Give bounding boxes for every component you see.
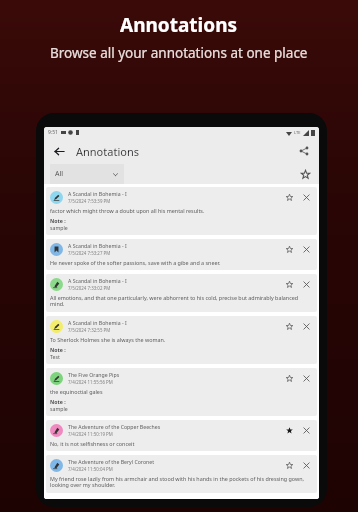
staticText: sample: [50, 224, 68, 231]
button[interactable]: Delete: [300, 459, 313, 472]
button[interactable]: Share: [295, 142, 313, 160]
staticText: All emotions, and that one particularly,…: [50, 294, 313, 308]
staticText: The Adventure of the Copper Beeches: [68, 423, 161, 430]
staticText: the equinoctial gales: [50, 388, 103, 395]
button[interactable]: Back: [50, 142, 68, 160]
staticText: The Five Orange Pips: [68, 371, 120, 378]
staticText: 7/5/2024 7:32:55 PM: [68, 327, 111, 333]
staticText: Test: [50, 353, 60, 360]
button[interactable]: A Scandal in Bohemia - I: [46, 239, 317, 270]
staticText: A Scandal in Bohemia - I: [68, 190, 127, 197]
button[interactable]: Favorite: [283, 459, 296, 472]
staticText: 7/4/2024 11:50:04 PM: [68, 466, 113, 472]
staticText: LTE: [294, 130, 301, 135]
button[interactable]: Favorite: [283, 278, 296, 291]
staticText: He never spoke of the softer passions, s…: [50, 259, 221, 266]
staticText: Note :: [50, 217, 66, 224]
staticText: Annotations: [76, 144, 139, 159]
button[interactable]: Favorite: [283, 243, 296, 256]
button[interactable]: A Scandal in Bohemia - I: [46, 316, 317, 364]
staticText: Browse all your annotations at one place: [50, 44, 308, 62]
button[interactable]: Favorites filter: [297, 166, 313, 182]
staticText: 7/4/2024 11:55:56 PM: [68, 379, 113, 385]
button[interactable]: The Five Orange Pips: [46, 368, 317, 416]
staticText: sample: [50, 405, 68, 412]
staticText: Annotations: [120, 12, 238, 38]
button[interactable]: A Scandal in Bohemia - I: [46, 274, 317, 312]
button[interactable]: Delete: [300, 424, 313, 437]
staticText: To Sherlock Holmes she is always the wom…: [50, 336, 166, 343]
button[interactable]: Delete: [300, 243, 313, 256]
button[interactable]: Delete: [300, 372, 313, 385]
button[interactable]: A Scandal in Bohemia - I: [46, 187, 317, 235]
button[interactable]: The Adventure of the Beryl Coronet: [46, 455, 317, 493]
staticText: No, it is not selfishness or conceit: [50, 440, 135, 447]
staticText: 7/4/2024 11:50:19 PM: [68, 431, 113, 437]
staticText: A Scandal in Bohemia - I: [68, 277, 127, 284]
staticText: A Scandal in Bohemia - I: [68, 242, 127, 249]
staticText: 7/5/2024 7:33:02 PM: [68, 285, 111, 291]
button[interactable]: All: [50, 164, 124, 184]
staticText: 9:51: [48, 129, 58, 136]
button[interactable]: Favorite: [283, 191, 296, 204]
button[interactable]: Favorite: [283, 424, 296, 437]
button[interactable]: Favorite: [283, 320, 296, 333]
button[interactable]: Favorite: [283, 372, 296, 385]
button[interactable]: The Adventure of the Copper Beeches: [46, 420, 317, 451]
staticText: Note :: [50, 398, 66, 405]
staticText: A Scandal in Bohemia - I: [68, 319, 127, 326]
staticText: 7/5/2024 7:53:27 PM: [68, 250, 111, 256]
staticText: All: [55, 169, 64, 179]
button[interactable]: Delete: [300, 320, 313, 333]
staticText: The Adventure of the Beryl Coronet: [68, 458, 155, 465]
staticText: Note :: [50, 346, 66, 353]
staticText: 7/5/2024 7:53:39 PM: [68, 198, 111, 204]
staticText: factor which might throw a doubt upon al…: [50, 207, 205, 214]
button[interactable]: Delete: [300, 191, 313, 204]
button[interactable]: Delete: [300, 278, 313, 291]
staticText: My friend rose lazily from his armchair …: [50, 475, 313, 489]
